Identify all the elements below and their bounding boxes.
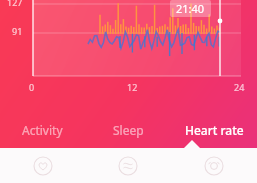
staticText: 0 (29, 81, 35, 93)
button[interactable]: Sleep (85, 148, 171, 183)
staticText: 91 (12, 25, 23, 37)
button[interactable]: Heart rate (171, 118, 257, 142)
staticText: Activity (22, 122, 63, 138)
staticText: 24 (234, 81, 245, 93)
staticText: 21:40 (176, 1, 205, 16)
staticText: 12 (127, 81, 138, 93)
button[interactable]: Sleep (85, 118, 171, 142)
button[interactable]: Heart rate (0, 148, 85, 183)
button[interactable]: Profile (171, 148, 257, 183)
staticText: Sleep (113, 122, 144, 138)
button[interactable]: Activity (0, 118, 85, 142)
staticText: 127 (7, 0, 23, 8)
staticText: Heart rate (185, 122, 244, 138)
